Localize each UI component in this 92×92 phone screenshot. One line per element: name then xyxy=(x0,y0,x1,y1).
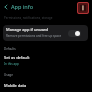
staticText: Usage xyxy=(4,73,13,77)
button[interactable]: Manage app if unused xyxy=(68,30,81,37)
staticText: Set as default xyxy=(4,55,30,60)
staticText: App info xyxy=(11,3,34,10)
staticText: Manage app if unused xyxy=(6,27,49,32)
button[interactable]: Set as default xyxy=(0,53,92,67)
button[interactable]: Back xyxy=(0,1,11,12)
staticText: In this app xyxy=(4,62,19,66)
button[interactable]: Manage app if unused xyxy=(3,25,88,41)
button[interactable]: Mobile data xyxy=(0,80,92,92)
staticText: Remove permissions and free up space xyxy=(6,34,62,38)
staticText: Defaults xyxy=(4,47,16,51)
staticText: Mobile data xyxy=(4,83,27,88)
button[interactable]: App icon xyxy=(77,2,89,14)
staticText: Permissions, notifications, storage xyxy=(4,16,53,20)
